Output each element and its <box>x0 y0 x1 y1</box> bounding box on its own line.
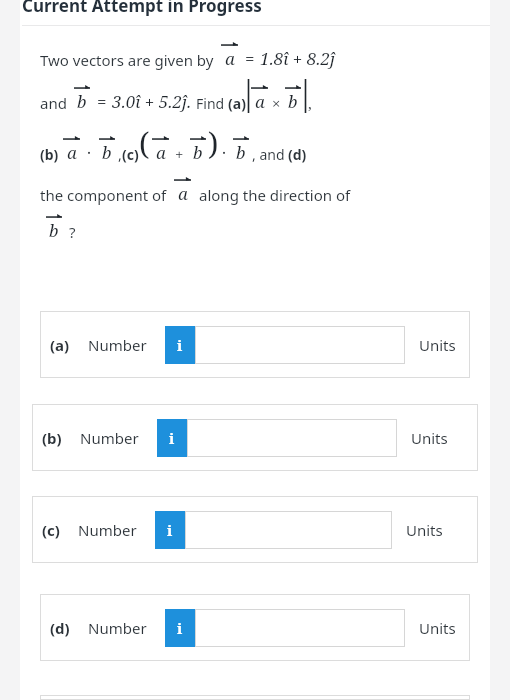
staticText: = <box>245 47 255 70</box>
staticText: Units <box>411 428 448 448</box>
button[interactable]: (a) <box>40 311 470 378</box>
staticText: (b) <box>40 145 59 164</box>
staticText: ) <box>208 123 219 164</box>
staticText: (c) <box>42 520 60 540</box>
staticText: a <box>156 141 166 164</box>
staticText: Units <box>419 335 456 355</box>
staticText: + <box>175 144 184 164</box>
button[interactable] <box>187 419 397 457</box>
staticText: a <box>67 141 77 164</box>
staticText: Current Attempt in Progress <box>22 0 262 17</box>
staticText: , <box>118 145 122 164</box>
button[interactable]: Info <box>155 511 185 549</box>
button[interactable] <box>195 326 405 364</box>
staticText: Two vectors are given by <box>40 50 214 70</box>
staticText: (a) <box>50 335 70 355</box>
staticText: b <box>288 90 298 113</box>
button[interactable] <box>185 511 392 549</box>
staticText: · <box>222 142 227 164</box>
button[interactable]: Info <box>165 609 195 647</box>
staticText: = <box>97 90 107 113</box>
staticText: Number <box>88 618 147 638</box>
staticText: 3.0î + 5.2ĵ. <box>112 90 192 113</box>
staticText: (d) <box>288 145 307 164</box>
button[interactable] <box>195 609 405 647</box>
staticText: Find <box>196 94 225 113</box>
staticText: and <box>40 93 67 113</box>
staticText: Number <box>88 335 147 355</box>
button[interactable]: Info <box>157 419 187 457</box>
staticText: , and <box>252 145 285 164</box>
button[interactable]: (b) <box>32 404 478 471</box>
staticText: i <box>177 618 183 638</box>
staticText: a <box>255 90 265 113</box>
staticText: a <box>178 182 188 205</box>
staticText: b <box>49 219 59 242</box>
staticText: i <box>177 335 183 355</box>
staticText: b <box>193 141 203 164</box>
staticText: Number <box>80 428 139 448</box>
staticText: along the direction of <box>199 185 351 205</box>
staticText: , <box>308 93 312 113</box>
button[interactable]: (d) <box>40 594 470 661</box>
staticText: b <box>77 90 87 113</box>
staticText: ? <box>69 222 76 242</box>
staticText: ( <box>139 123 150 164</box>
staticText: i <box>169 428 175 448</box>
staticText: × <box>272 93 281 113</box>
staticText: the component of <box>40 185 167 205</box>
staticText: (b) <box>42 428 62 448</box>
staticText: · <box>87 142 92 164</box>
staticText: b <box>102 141 112 164</box>
staticText: i <box>167 520 173 540</box>
staticText: Number <box>78 520 137 540</box>
staticText: (d) <box>50 618 70 638</box>
staticText: 1.8î + 8.2ĵ <box>260 47 335 70</box>
button[interactable]: (c) <box>32 496 478 563</box>
staticText: a <box>225 47 235 70</box>
staticText: (a) <box>228 94 246 113</box>
button[interactable]: Info <box>165 326 195 364</box>
staticText: Units <box>406 520 443 540</box>
staticText: Units <box>419 618 456 638</box>
staticText: (c) <box>122 145 139 164</box>
staticText: b <box>236 141 246 164</box>
